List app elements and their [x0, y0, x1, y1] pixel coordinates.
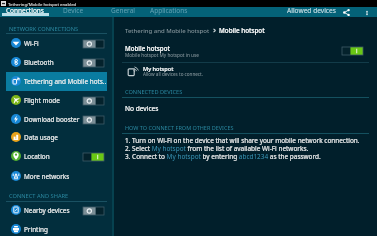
staticText: Tethering and Mobile hots..	[24, 77, 107, 86]
button[interactable]: Allowed devices	[287, 7, 346, 17]
button[interactable]: Scan	[342, 8, 351, 17]
button[interactable]: Nearby devices	[0, 201, 112, 220]
staticText: Device	[63, 6, 84, 15]
button[interactable]: Switch off	[83, 59, 104, 67]
button[interactable]: General	[111, 7, 140, 17]
button[interactable]: Switch on	[342, 47, 363, 55]
staticText: Connections	[6, 6, 44, 15]
staticText: Mobile hotspot	[125, 44, 170, 52]
staticText: 1. Turn on Wi-Fi on the device that will…	[125, 136, 360, 145]
staticText: CONNECT AND SHARE	[9, 192, 69, 200]
button[interactable]: Wi-Fi	[0, 34, 112, 53]
staticText: Allowed devices	[287, 6, 336, 15]
staticText: Bluetooth	[24, 58, 54, 67]
staticText: Mobile hotspot My hotspot in use	[125, 52, 199, 58]
button[interactable]: Applications	[150, 7, 198, 17]
staticText: Flight mode	[24, 96, 60, 105]
staticText: Mobile hotspot	[219, 26, 265, 35]
button[interactable]: Flight mode	[0, 91, 112, 110]
button[interactable]: More networks	[0, 167, 112, 186]
button[interactable]: More options	[362, 8, 371, 17]
staticText: No devices	[125, 104, 159, 113]
staticText: My hotspot	[143, 65, 174, 73]
button[interactable]: Connections	[6, 7, 50, 17]
staticText: Nearby devices	[24, 206, 70, 215]
staticText: More networks	[24, 172, 70, 181]
button[interactable]: Tethering and Mobile hots..	[0, 72, 112, 91]
staticText: 2. Select My hotspot from the list of av…	[125, 144, 309, 153]
button[interactable]: Switch on	[83, 153, 104, 161]
staticText: General	[111, 6, 135, 15]
button[interactable]: Switch off	[83, 207, 104, 215]
button[interactable]: Data usage	[0, 128, 112, 147]
staticText: NETWORK CONNECTIONS	[9, 25, 79, 33]
staticText: Tethering and Mobile hotspot	[125, 27, 210, 35]
staticText: 3. Connect to My hotspot by entering abc…	[125, 152, 321, 161]
staticText: HOW TO CONNECT FROM OTHER DEVICES	[125, 124, 234, 131]
staticText: Download booster	[24, 115, 80, 124]
staticText: Location	[24, 152, 50, 161]
button[interactable]: Switch off	[83, 116, 104, 124]
staticText: CONNECTED DEVICES	[125, 88, 183, 96]
button[interactable]: Mobile hotspot	[114, 40, 377, 62]
staticText: Printing	[24, 225, 48, 234]
staticText: Allow all devices to connect.	[143, 71, 203, 77]
button[interactable]: Printing	[0, 220, 112, 236]
button[interactable]: Device	[63, 7, 89, 17]
staticText: Data usage	[24, 133, 58, 142]
button[interactable]: Bluetooth	[0, 53, 112, 72]
staticText: Wi-Fi	[24, 39, 39, 48]
button[interactable]: Download booster	[0, 110, 112, 129]
button[interactable]: Switch off	[83, 40, 104, 48]
button[interactable]: My hotspot	[114, 62, 377, 79]
staticText: Applications	[150, 6, 188, 15]
button[interactable]: Switch off	[83, 97, 104, 105]
staticText: Tethering/Mobile hotspot enabled	[8, 1, 77, 7]
button[interactable]: Location	[0, 147, 112, 166]
